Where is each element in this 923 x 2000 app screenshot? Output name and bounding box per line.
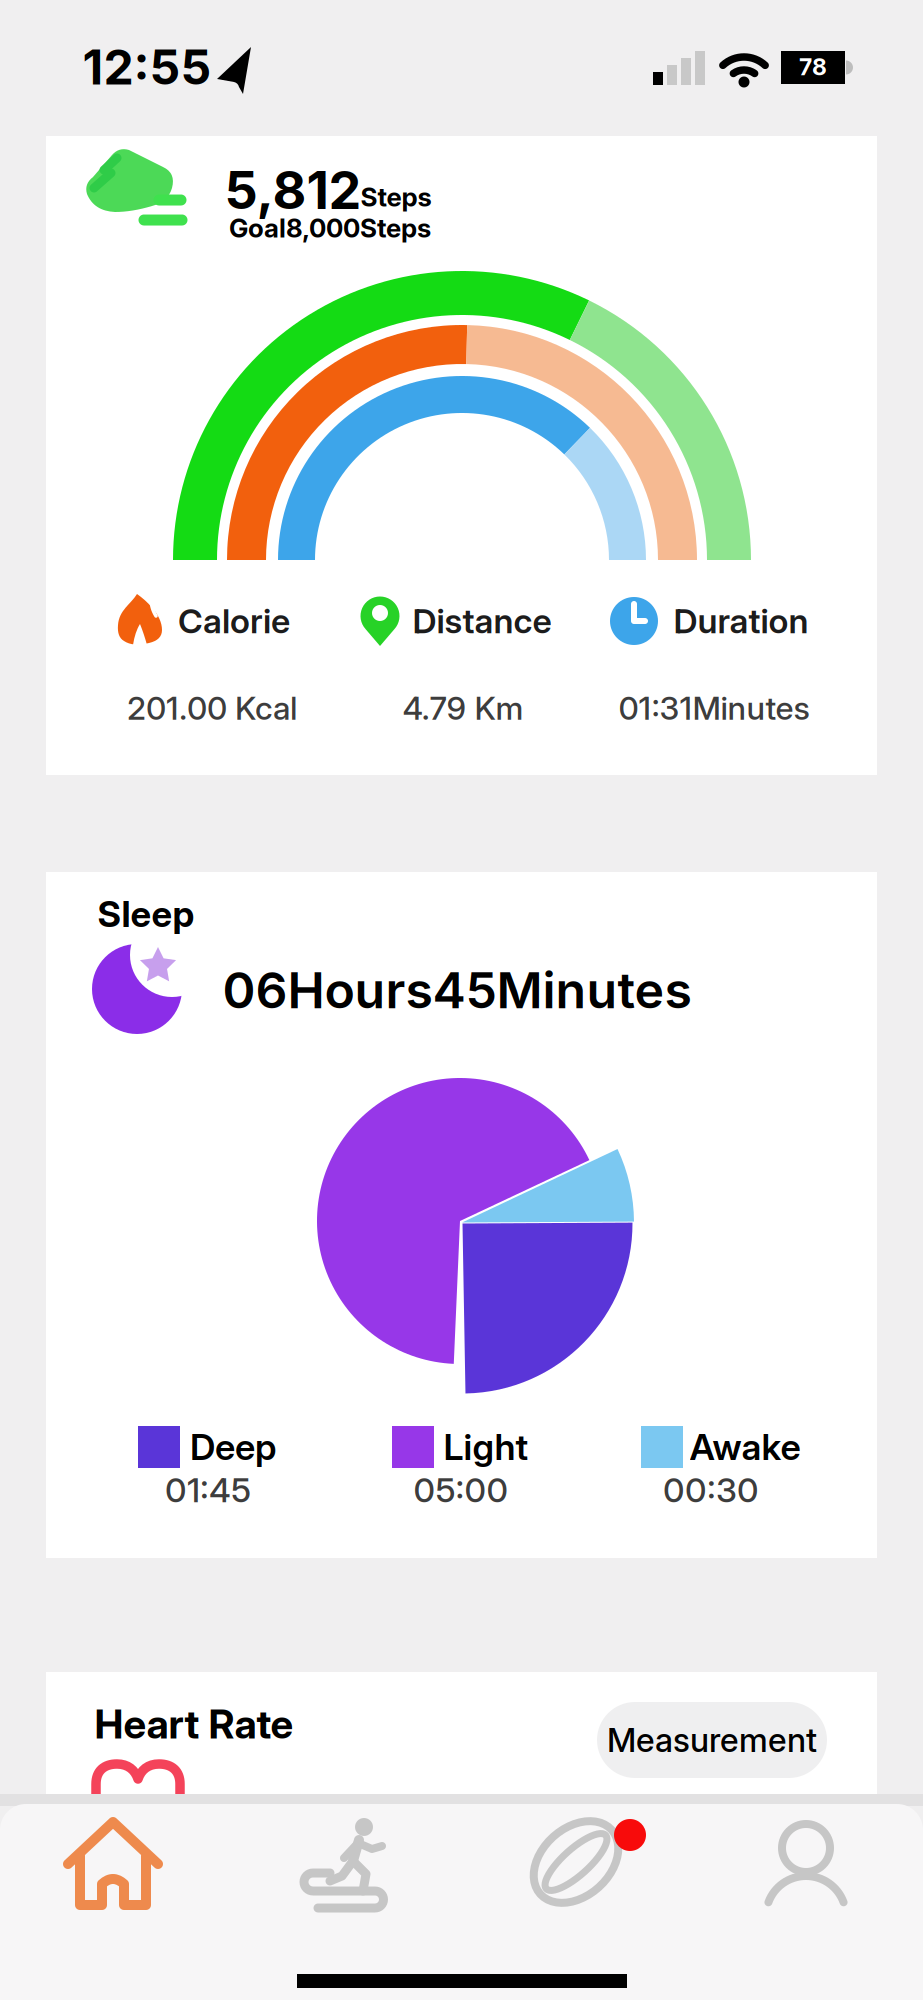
staticText: Measurement <box>607 1720 817 1760</box>
staticText: 06Hours45Minutes <box>222 960 691 1020</box>
staticText: 5,812 <box>224 158 361 221</box>
staticText: 01:45 <box>165 1469 251 1510</box>
staticText: Goal8,000Steps <box>229 212 431 244</box>
staticText: Calorie <box>178 600 290 641</box>
staticText: Heart Rate <box>94 1700 293 1748</box>
staticText: Duration <box>673 600 808 641</box>
staticText: Light <box>443 1425 528 1469</box>
button[interactable]: Home <box>25 1797 205 1937</box>
button[interactable]: Exercise <box>256 1797 436 1937</box>
staticText: 4.79 Km <box>402 689 523 727</box>
staticText: 201.00 Kcal <box>127 689 297 727</box>
staticText: 12:55 <box>82 38 211 96</box>
staticText: 78 <box>799 53 827 81</box>
staticText: Distance <box>412 600 551 641</box>
button[interactable]: Profile <box>718 1797 898 1937</box>
staticText: 05:00 <box>413 1469 508 1510</box>
staticText: Awake <box>689 1425 800 1469</box>
button[interactable]: Measurement <box>597 1702 827 1778</box>
button[interactable]: Device <box>487 1797 667 1937</box>
staticText: Sleep <box>97 892 194 936</box>
staticText: Steps <box>360 181 431 213</box>
staticText: 01:31Minutes <box>618 689 809 727</box>
staticText: Deep <box>190 1425 276 1469</box>
staticText: 00:30 <box>663 1469 759 1510</box>
